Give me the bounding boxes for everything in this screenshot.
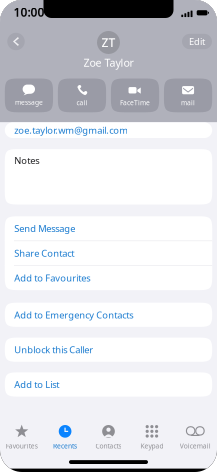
staticText: zoe.taylor.wm@gmail.com <box>14 124 128 136</box>
staticText: Keypad <box>140 442 163 450</box>
staticText: Add to List <box>14 378 59 391</box>
button[interactable]: Edit <box>182 34 212 49</box>
staticText: FaceTime <box>120 98 150 107</box>
staticText: Unblock this Caller <box>14 343 93 356</box>
staticText: Zoe Taylor <box>83 55 133 70</box>
button[interactable]: Voicemail <box>174 425 217 455</box>
button[interactable]: Unblock this Caller <box>5 338 212 362</box>
button[interactable]: Add to List <box>5 372 212 397</box>
staticText: mail <box>181 98 195 107</box>
button[interactable]: FaceTime <box>111 78 159 112</box>
button[interactable]: Send Message <box>5 216 212 240</box>
button[interactable]: Back <box>4 29 28 53</box>
button[interactable]: Add to Favourites <box>5 266 212 290</box>
staticText: Favourites <box>6 442 38 450</box>
staticText: ZT <box>101 34 115 50</box>
button[interactable]: Contacts <box>87 425 130 455</box>
button[interactable]: Keypad <box>130 425 174 455</box>
staticText: call <box>76 98 87 107</box>
button[interactable]: message <box>5 78 53 112</box>
staticText: Add to Emergency Contacts <box>14 309 133 321</box>
staticText: message <box>15 98 43 107</box>
staticText: Send Message <box>14 222 75 235</box>
staticText: 10:00 <box>13 4 44 20</box>
staticText: Notes <box>14 154 39 167</box>
staticText: Edit <box>189 35 205 48</box>
button[interactable]: mail <box>164 78 212 112</box>
button[interactable]: Recents <box>43 425 87 455</box>
button[interactable]: Favourites <box>0 425 43 455</box>
staticText: Contacts <box>95 442 121 450</box>
staticText: Voicemail <box>180 442 211 450</box>
button[interactable]: call <box>58 78 106 112</box>
staticText: Add to Favourites <box>14 272 90 284</box>
button[interactable]: Share Contact <box>5 241 212 265</box>
staticText: Recents <box>53 442 77 450</box>
button[interactable]: Add to Emergency Contacts <box>5 303 212 327</box>
staticText: Share Contact <box>14 247 74 259</box>
